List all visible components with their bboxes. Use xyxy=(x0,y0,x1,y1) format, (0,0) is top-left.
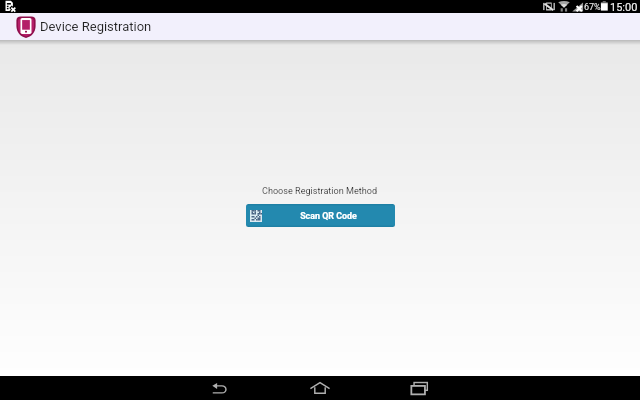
button[interactable]: Recents xyxy=(385,376,453,400)
button[interactable]: Back xyxy=(185,376,253,400)
staticText: Scan QR Code xyxy=(300,211,357,221)
button[interactable]: Home xyxy=(286,376,354,400)
staticText: 15:00 xyxy=(610,1,638,14)
staticText: Device Registration xyxy=(40,19,152,34)
staticText: 67% xyxy=(584,2,601,13)
button[interactable]: Scan QR Code xyxy=(246,204,395,227)
staticText: Choose Registration Method xyxy=(262,186,378,197)
